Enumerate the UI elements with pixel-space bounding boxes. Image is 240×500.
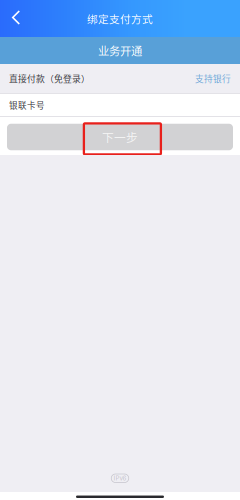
staticText: 下一步 bbox=[102, 128, 138, 145]
staticText: 绑定支付方式 bbox=[87, 11, 153, 26]
button[interactable]: 下一步 bbox=[7, 124, 233, 150]
button[interactable]: Back bbox=[0, 0, 32, 37]
staticText: 银联卡号 bbox=[9, 99, 45, 111]
button[interactable]: 支持银行 bbox=[195, 72, 231, 85]
staticText: 业务开通 bbox=[98, 42, 142, 59]
staticText: IPv6 bbox=[113, 474, 126, 482]
staticText: 直接付款（免登录） bbox=[9, 72, 90, 85]
staticText: 支持银行 bbox=[195, 72, 231, 85]
